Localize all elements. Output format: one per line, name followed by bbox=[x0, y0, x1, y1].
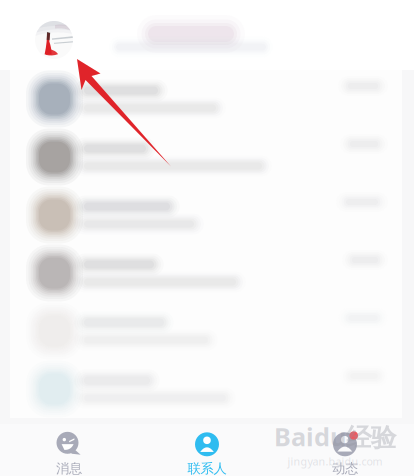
staticText: 联系人 bbox=[187, 460, 226, 476]
staticText: 动态 bbox=[332, 460, 358, 476]
button[interactable] bbox=[10, 128, 402, 186]
button[interactable] bbox=[10, 186, 402, 244]
button[interactable] bbox=[10, 302, 402, 360]
staticText: jingyan.baidu.com bbox=[287, 454, 382, 468]
button[interactable]: 动态 bbox=[276, 424, 414, 476]
staticText: 消息 bbox=[56, 460, 82, 476]
button[interactable] bbox=[10, 360, 402, 418]
button[interactable] bbox=[10, 70, 402, 128]
button[interactable]: 消息 bbox=[0, 424, 138, 476]
staticText: Baidu经验 bbox=[274, 419, 396, 453]
button[interactable] bbox=[10, 244, 402, 302]
button[interactable]: 联系人 bbox=[138, 424, 276, 476]
